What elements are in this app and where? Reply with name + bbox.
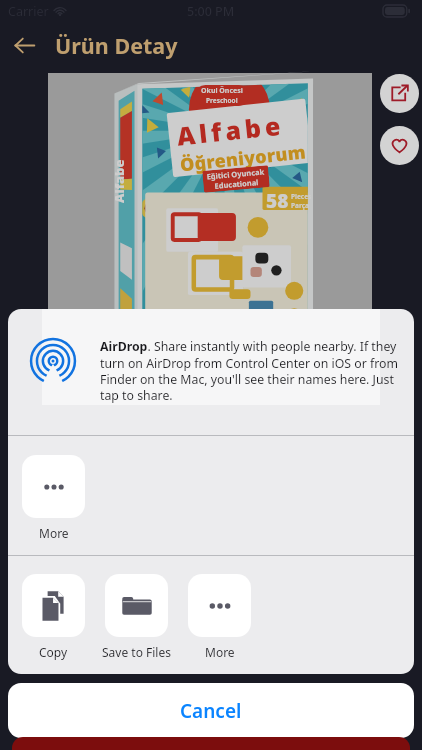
staticText: Cancel xyxy=(180,698,242,724)
staticText: AirDrop. Share instantly with people nea… xyxy=(100,338,398,404)
button[interactable]: Favorite xyxy=(380,126,419,165)
staticText: 5:00 PM xyxy=(187,3,235,20)
staticText: Öğreniyorum xyxy=(179,139,308,177)
staticText: Alfabe xyxy=(175,107,286,153)
button[interactable]: Back xyxy=(5,26,43,64)
button[interactable]: Cancel xyxy=(8,683,414,738)
button[interactable] xyxy=(22,574,85,637)
staticText: Preschool xyxy=(206,96,238,105)
staticText: Copy xyxy=(39,644,68,660)
staticText: Ürün Detay xyxy=(55,31,178,60)
staticText: 58 xyxy=(266,188,289,214)
staticText: Save to Files xyxy=(102,644,171,660)
staticText: Okul Öncesi xyxy=(201,86,243,96)
staticText: More xyxy=(205,644,235,660)
staticText: Parça xyxy=(291,201,309,210)
button[interactable]: Share xyxy=(380,74,419,113)
button[interactable] xyxy=(22,455,85,518)
staticText: Eğitici Oyuncak xyxy=(206,166,265,181)
staticText: Educational xyxy=(214,177,259,191)
staticText: More xyxy=(39,525,69,541)
staticText: Alfabe xyxy=(110,159,128,203)
staticText: Carrier xyxy=(8,3,49,20)
staticText: Pieces xyxy=(291,192,312,201)
button[interactable] xyxy=(188,574,251,637)
button[interactable] xyxy=(105,574,168,637)
